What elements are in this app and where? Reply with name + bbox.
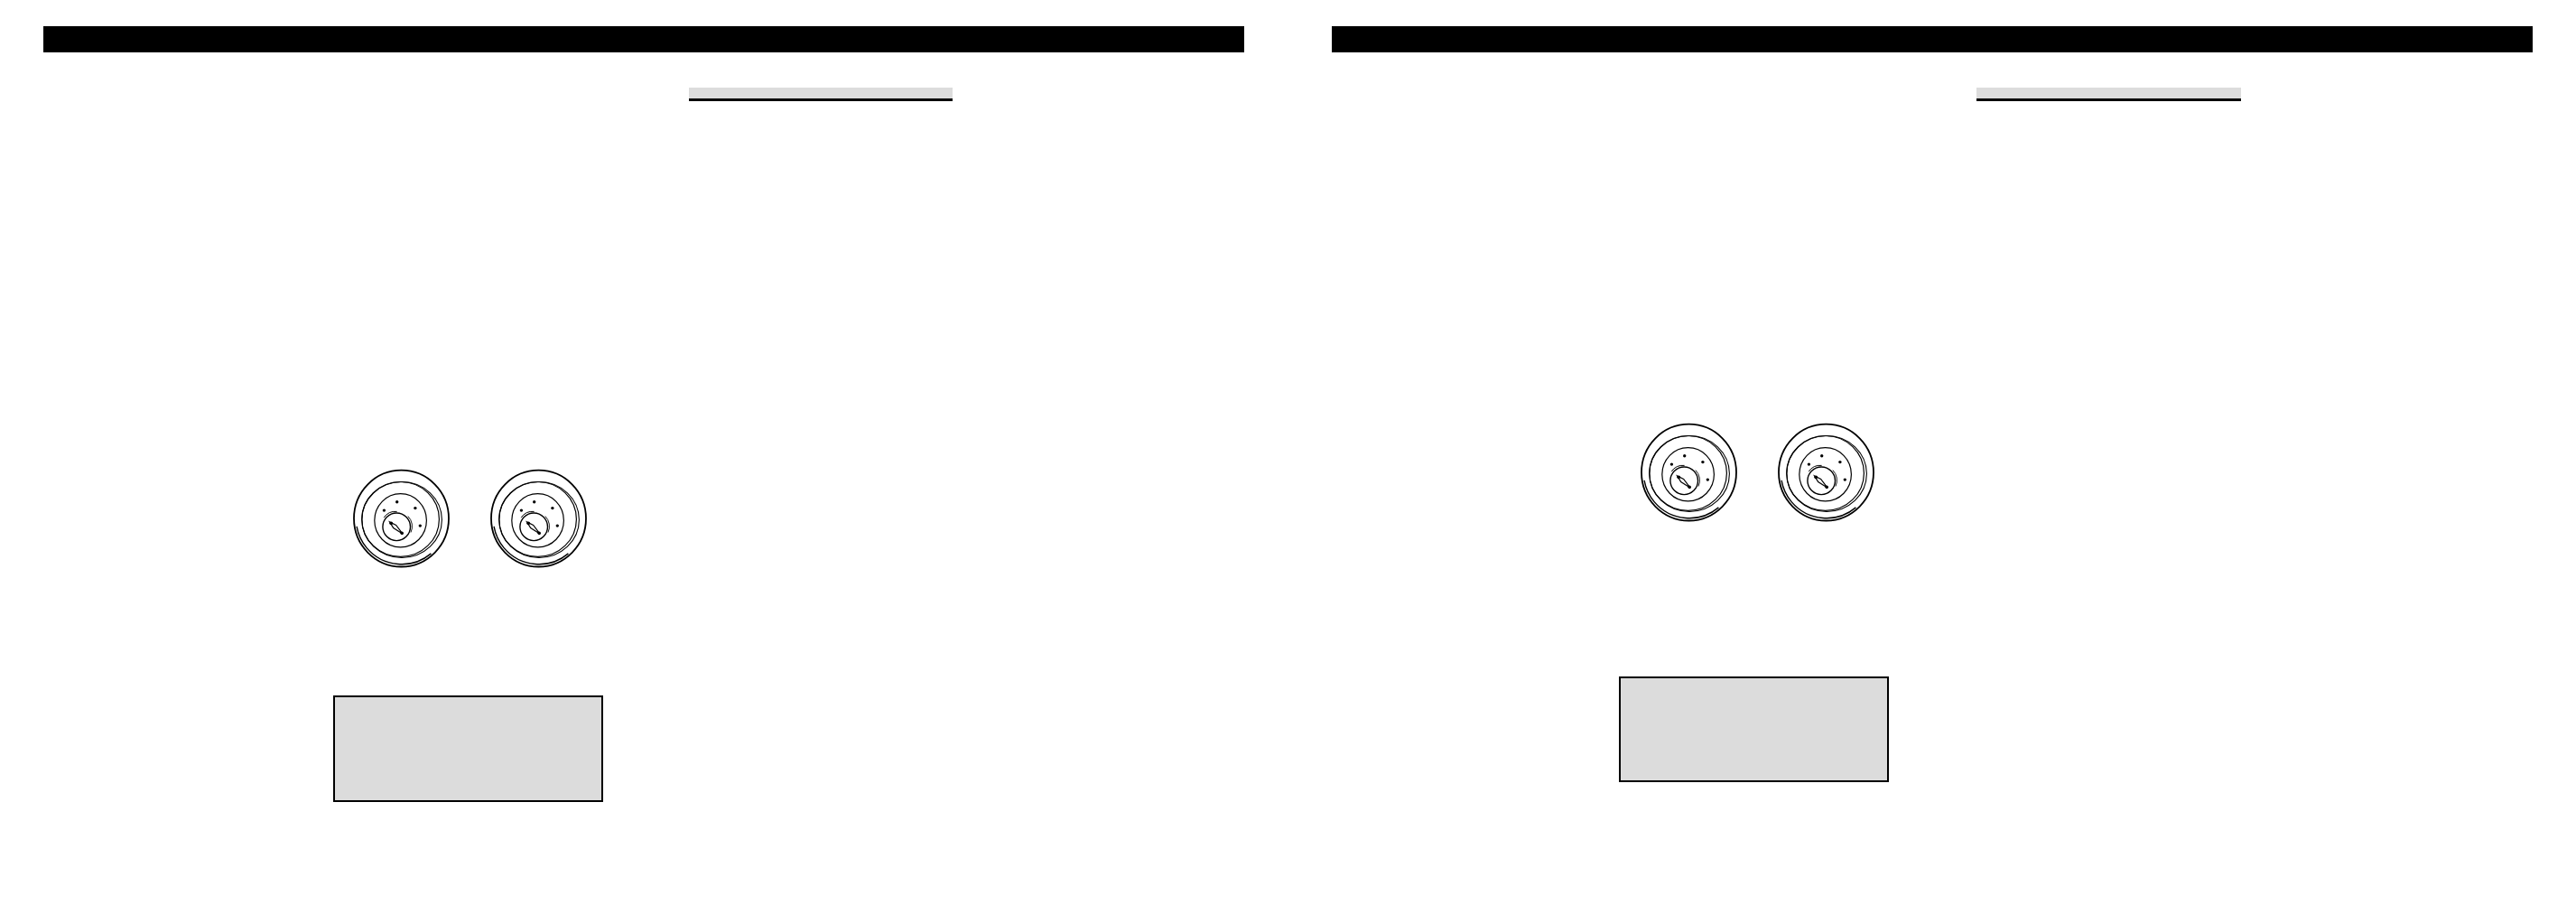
button[interactable]: Text field xyxy=(689,88,953,101)
button[interactable]: App bar xyxy=(1332,26,2533,52)
button[interactable]: Gauge xyxy=(486,466,591,572)
button[interactable]: Text field xyxy=(1976,88,2241,101)
button[interactable]: Card xyxy=(1619,676,1889,782)
button[interactable]: App bar xyxy=(43,26,1244,52)
button[interactable]: Gauge xyxy=(349,466,454,572)
button[interactable]: Gauge xyxy=(1773,420,1879,526)
button[interactable]: Gauge xyxy=(1636,420,1742,526)
button[interactable]: Card xyxy=(333,695,603,802)
